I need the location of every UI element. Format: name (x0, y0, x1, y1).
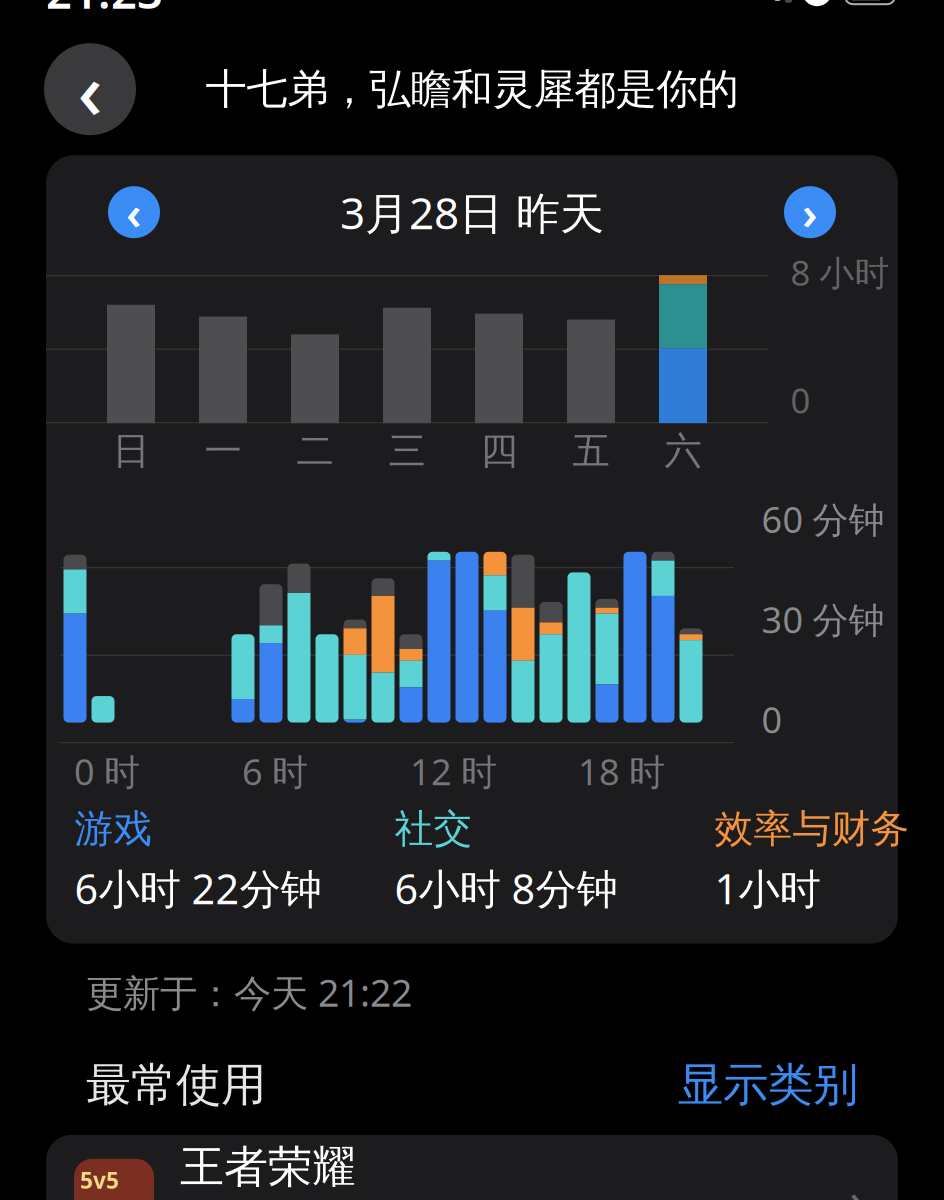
staticText: 日 (112, 428, 149, 474)
staticText: 60 分钟 (761, 495, 884, 543)
staticText: 6小时 22分钟 (74, 861, 321, 916)
staticText: 显示类别 (678, 1057, 858, 1113)
staticText: 12 时 (410, 747, 497, 795)
staticText: ‹ (126, 182, 142, 242)
staticText: 21:23 (46, 0, 163, 21)
staticText: 5v5 (80, 1165, 119, 1195)
staticText: 0 (761, 695, 782, 743)
staticText: 0 时 (74, 747, 140, 795)
button[interactable]: 后一天 (784, 186, 836, 238)
staticText: 0 (790, 377, 810, 423)
staticText: ‹ (77, 38, 102, 140)
button[interactable]: 显示类别 (678, 1057, 858, 1113)
staticText: 社交 (394, 805, 472, 853)
staticText: › (849, 1163, 866, 1200)
staticText: 6小时 8分钟 (394, 861, 617, 916)
staticText: 最常使用 (86, 1057, 266, 1113)
staticText: 五 (572, 428, 609, 474)
staticText: 18 时 (578, 747, 665, 795)
button[interactable]: 前一天 (108, 186, 160, 238)
staticText: 30 分钟 (761, 595, 884, 643)
staticText: 三 (388, 428, 425, 474)
staticText: 更新于：今天 21:22 (86, 968, 412, 1017)
staticText: 十七弟，弘瞻和灵犀都是你的 (205, 64, 738, 115)
staticText: 8 小时 (790, 249, 889, 295)
button[interactable]: 5v5 (46, 1135, 898, 1200)
staticText: 四 (480, 428, 517, 474)
staticText: 3月28日 昨天 (340, 183, 604, 241)
staticText: 效率与财务 (714, 805, 909, 853)
staticText: 二 (296, 428, 333, 474)
staticText: › (802, 182, 818, 242)
staticText: 游戏 (74, 805, 152, 853)
staticText: 一 (204, 428, 241, 474)
button[interactable]: 返回 (44, 43, 136, 135)
staticText: 1小时 (714, 861, 820, 916)
staticText: 六 (664, 428, 701, 474)
staticText: 6 时 (242, 747, 308, 795)
staticText: 王者荣耀 (180, 1140, 356, 1194)
